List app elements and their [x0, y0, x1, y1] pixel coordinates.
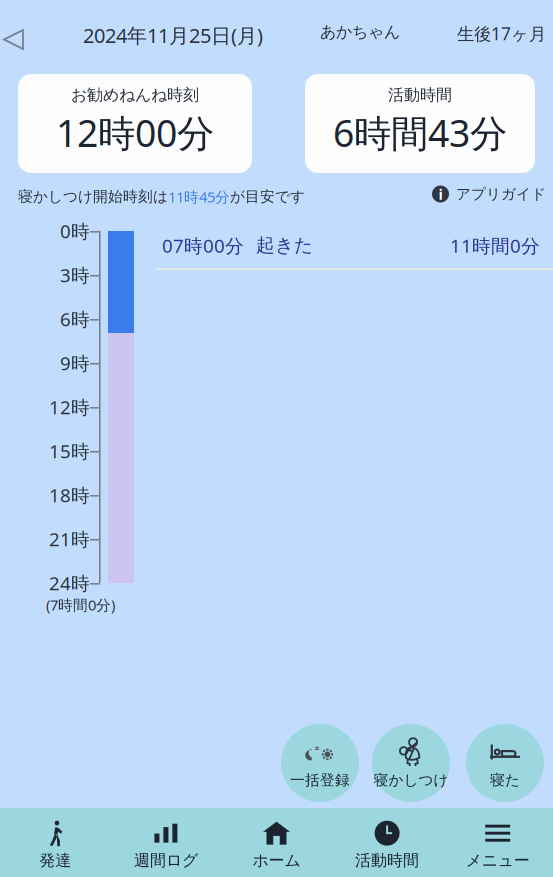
staticText: 2024年11月25日(月): [83, 22, 263, 49]
staticText: 活動時間: [355, 851, 419, 870]
staticText: 15時: [49, 439, 90, 463]
staticText: 起きた: [256, 234, 313, 257]
button[interactable]: ホーム: [221, 808, 332, 877]
button[interactable]: 寝かしつけ: [372, 724, 450, 802]
staticText: 0時: [60, 219, 90, 243]
staticText: が目安です: [230, 188, 305, 206]
staticText: (7時間0分): [46, 595, 115, 614]
staticText: あかちゃん: [320, 22, 400, 42]
staticText: 9時: [60, 351, 90, 375]
staticText: 寝かしつけ: [373, 771, 448, 789]
staticText: ホーム: [252, 851, 300, 870]
staticText: 寝た: [490, 771, 520, 789]
staticText: 07時00分: [162, 233, 244, 258]
button[interactable]: 活動時間: [332, 808, 442, 877]
staticText: 生後17ヶ月: [457, 22, 546, 45]
button[interactable]: 一括登録: [281, 724, 359, 802]
button[interactable]: Back: [0, 22, 33, 57]
button[interactable]: 週間ログ: [111, 808, 221, 877]
staticText: アプリガイド: [456, 185, 546, 203]
button[interactable]: i: [432, 185, 546, 203]
staticText: i: [438, 184, 442, 204]
staticText: 一括登録: [290, 771, 350, 789]
staticText: 6時間43分: [333, 108, 507, 157]
staticText: 週間ログ: [134, 851, 198, 870]
button[interactable]: メニュー: [442, 808, 553, 877]
staticText: 3時: [60, 263, 90, 287]
staticText: 12時: [49, 395, 90, 419]
staticText: メニュー: [466, 851, 530, 870]
button[interactable]: 寝た: [466, 724, 544, 802]
staticText: 寝かしつけ開始時刻は: [18, 188, 168, 206]
staticText: 12時00分: [56, 108, 214, 157]
staticText: お勧めねんね時刻: [71, 85, 199, 105]
staticText: 24時: [49, 571, 90, 595]
staticText: 11時45分: [168, 187, 230, 206]
staticText: 21時: [49, 527, 90, 551]
staticText: 18時: [49, 483, 90, 507]
button[interactable]: 07時00分: [155, 233, 553, 259]
button[interactable]: 発達: [0, 808, 111, 877]
staticText: 11時間0分: [450, 233, 540, 258]
staticText: 6時: [60, 307, 90, 331]
staticText: 活動時間: [388, 85, 452, 105]
staticText: 発達: [39, 851, 71, 870]
